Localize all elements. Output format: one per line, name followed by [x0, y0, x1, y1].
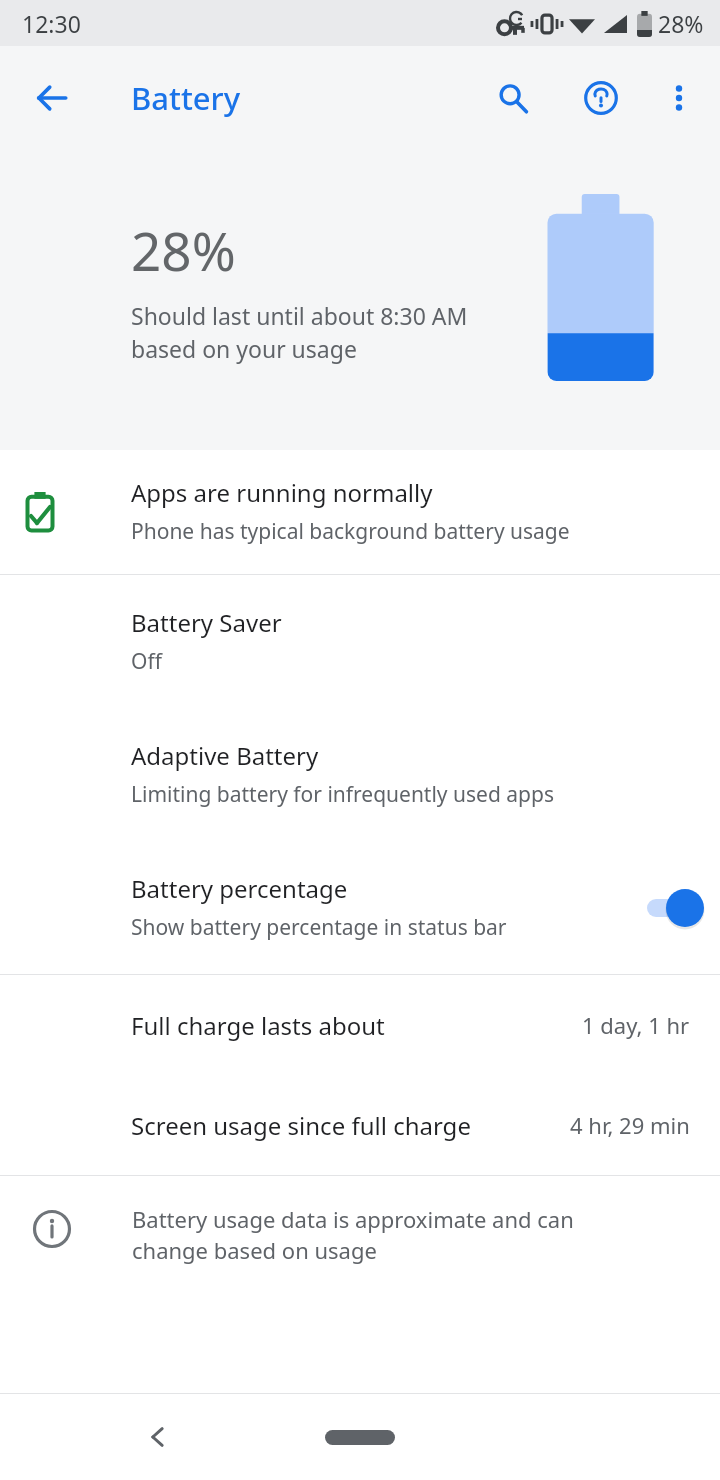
- button[interactable]: Battery Saver: [0, 575, 720, 708]
- button[interactable]: Battery percentage: [0, 841, 720, 974]
- staticText: Full charge lasts about: [131, 1009, 385, 1042]
- staticText: Battery usage data is approximate and ca…: [132, 1204, 574, 1266]
- button[interactable]: Back: [20, 66, 84, 130]
- staticText: Battery percentage: [131, 872, 348, 905]
- button[interactable]: Search: [481, 66, 545, 130]
- staticText: 28%: [131, 214, 236, 286]
- staticText: 1 day, 1 hr: [582, 1010, 690, 1040]
- staticText: Apps are running normally: [131, 476, 433, 509]
- staticText: 28%: [658, 8, 704, 39]
- staticText: Should last until about 8:30 AM based on…: [131, 300, 468, 365]
- staticText: Screen usage since full charge: [131, 1109, 471, 1142]
- staticText: Limiting battery for infrequently used a…: [131, 780, 554, 809]
- button[interactable]: Home: [305, 1414, 415, 1460]
- staticText: 4 hr, 29 min: [570, 1110, 690, 1140]
- staticText: Off: [131, 647, 162, 676]
- button[interactable]: Screen usage since full charge: [0, 1075, 720, 1175]
- button[interactable]: Adaptive Battery: [0, 708, 720, 841]
- staticText: Phone has typical background battery usa…: [131, 517, 570, 546]
- button[interactable]: Help: [569, 66, 633, 130]
- staticText: 12:30: [22, 8, 81, 39]
- button[interactable]: Back: [125, 1404, 191, 1470]
- staticText: Battery: [131, 77, 241, 119]
- staticText: Battery Saver: [131, 606, 282, 639]
- staticText: Show battery percentage in status bar: [131, 913, 507, 942]
- button[interactable]: Apps are running normally: [0, 450, 720, 574]
- staticText: Adaptive Battery: [131, 739, 319, 772]
- button[interactable]: Full charge lasts about: [0, 975, 720, 1075]
- button[interactable]: More options: [647, 66, 711, 130]
